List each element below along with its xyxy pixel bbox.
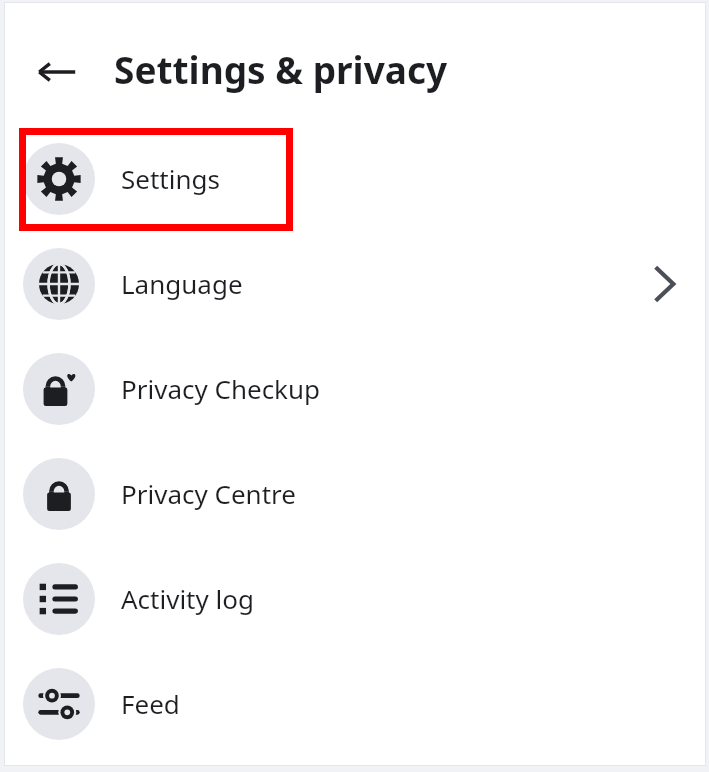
button[interactable]: Privacy Checkup [4,336,706,441]
button[interactable]: Settings [4,126,706,231]
staticText: Privacy Centre [121,476,296,511]
button[interactable]: Open Language [636,256,692,312]
staticText: Feed [121,686,180,721]
staticText: Activity log [121,581,254,616]
staticText: Language [121,266,243,301]
button[interactable]: Activity log [4,546,706,651]
button[interactable]: Back [30,46,82,98]
staticText: Settings [121,161,220,196]
button[interactable]: Language [4,231,706,336]
staticText: Settings & privacy [114,44,448,94]
button[interactable]: Feed [4,651,706,756]
button[interactable]: Privacy Centre [4,441,706,546]
staticText: Privacy Checkup [121,371,321,406]
